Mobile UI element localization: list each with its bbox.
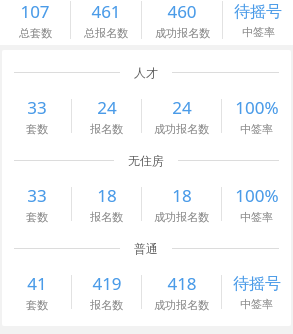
staticText: 套数	[26, 122, 48, 136]
button[interactable]: 41	[2, 272, 71, 312]
button[interactable]: 107	[0, 0, 70, 40]
staticText: 中签率	[242, 25, 275, 39]
button[interactable]: 待摇号	[222, 274, 291, 311]
button[interactable]: 100%	[222, 184, 291, 224]
staticText: 成功报名数	[154, 298, 209, 312]
button[interactable]: 33	[2, 96, 71, 136]
staticText: 套数	[26, 210, 48, 224]
staticText: 中签率	[240, 297, 273, 311]
staticText: 总套数	[19, 26, 52, 40]
staticText: 成功报名数	[154, 210, 209, 224]
staticText: 待摇号	[233, 274, 281, 294]
staticText: 24	[172, 96, 192, 119]
staticText: 普通	[134, 241, 158, 256]
button[interactable]: 461	[71, 0, 141, 40]
staticText: 待摇号	[234, 2, 282, 22]
staticText: 107	[20, 0, 50, 23]
button[interactable]: 18	[72, 184, 141, 224]
staticText: 报名数	[90, 210, 123, 224]
button[interactable]: 100%	[222, 96, 291, 136]
staticText: 18	[97, 184, 117, 207]
staticText: 33	[27, 184, 47, 207]
button[interactable]: 24	[72, 96, 141, 136]
staticText: 100%	[235, 184, 279, 207]
button[interactable]: 24	[142, 96, 221, 136]
staticText: 419	[92, 272, 122, 295]
button[interactable]: 待摇号	[223, 2, 293, 39]
button[interactable]: 18	[142, 184, 221, 224]
staticText: 总报名数	[84, 26, 128, 40]
staticText: 成功报名数	[154, 122, 209, 136]
staticText: 41	[27, 272, 47, 295]
staticText: 460	[167, 0, 197, 23]
button[interactable]: 419	[72, 272, 141, 312]
staticText: 中签率	[240, 122, 273, 136]
staticText: 套数	[26, 298, 48, 312]
staticText: 461	[91, 0, 121, 23]
staticText: 100%	[235, 96, 279, 119]
staticText: 24	[97, 96, 117, 119]
button[interactable]: 460	[142, 0, 222, 40]
staticText: 中签率	[240, 210, 273, 224]
staticText: 18	[172, 184, 192, 207]
button[interactable]: 418	[142, 272, 221, 312]
staticText: 成功报名数	[155, 26, 210, 40]
button[interactable]: 33	[2, 184, 71, 224]
staticText: 418	[167, 272, 197, 295]
staticText: 报名数	[90, 298, 123, 312]
staticText: 人才	[134, 65, 158, 80]
staticText: 无住房	[128, 153, 164, 168]
staticText: 报名数	[90, 122, 123, 136]
staticText: 33	[27, 96, 47, 119]
